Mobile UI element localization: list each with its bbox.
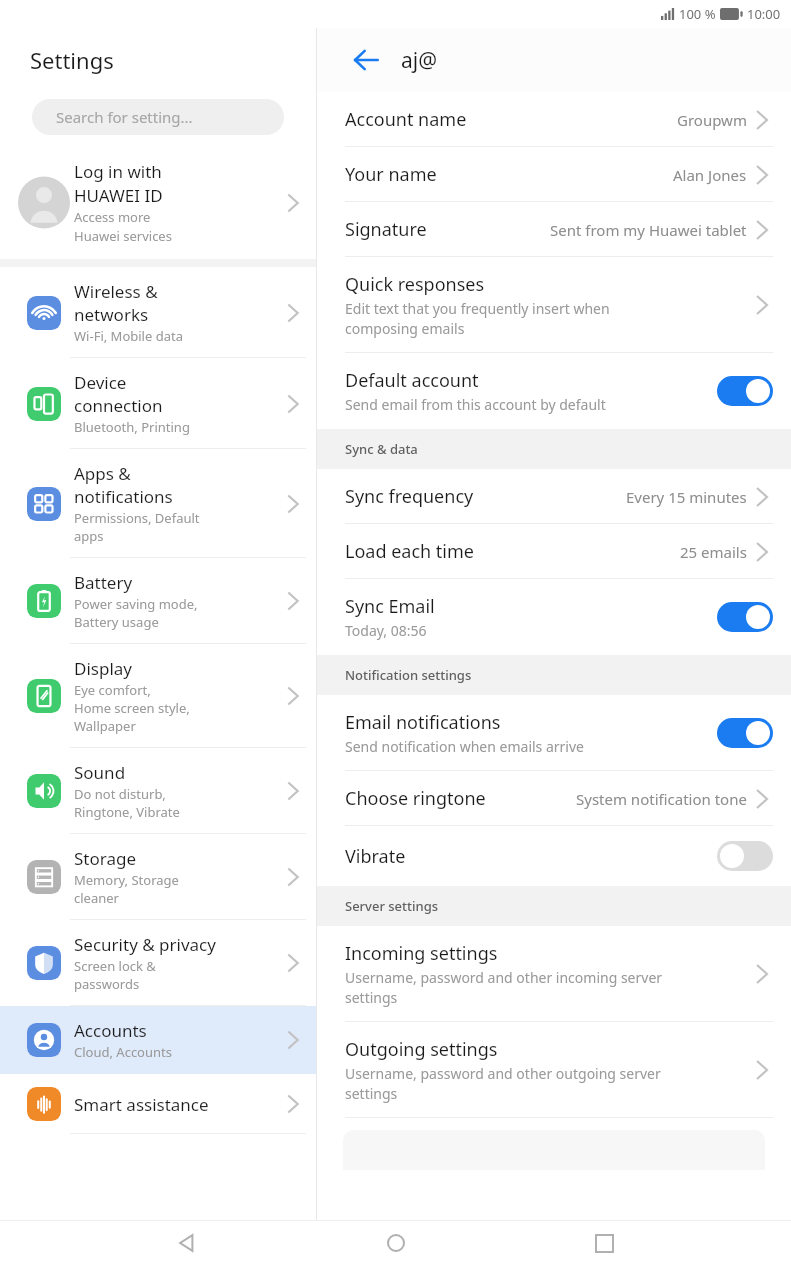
staticText: Username, password and other incoming se…	[345, 968, 663, 1007]
staticText: Edit text that you frequently insert whe…	[345, 299, 610, 338]
staticText: 10:00	[747, 5, 781, 23]
staticText: Default account	[345, 368, 479, 393]
button[interactable]: Signature	[317, 202, 791, 257]
button[interactable]: Account name	[317, 92, 791, 147]
staticText: Sound	[74, 761, 126, 784]
button[interactable]: Smart assistance	[0, 1074, 316, 1134]
button[interactable]: Apps & notifications	[0, 449, 316, 558]
staticText: Load each time	[345, 539, 474, 564]
staticText: Screen lock & passwords	[74, 957, 156, 993]
button[interactable]: Back	[165, 1221, 209, 1265]
button[interactable]: Security & privacy	[0, 920, 316, 1006]
staticText: Permissions, Default apps	[74, 509, 200, 545]
button[interactable]: Wireless & networks	[0, 267, 316, 358]
staticText: Power saving mode, Battery usage	[74, 595, 198, 631]
button[interactable]: Your name	[317, 147, 791, 202]
button[interactable]: Back	[345, 39, 387, 81]
staticText: Settings	[30, 45, 114, 75]
button[interactable]: Sync Email	[317, 579, 791, 655]
button[interactable]: Choose ringtone	[317, 771, 791, 826]
staticText: Account name	[345, 107, 467, 132]
staticText: Incoming settings	[345, 941, 498, 966]
staticText: Access more Huawei services	[74, 208, 172, 245]
button[interactable]: Load each time	[317, 524, 791, 579]
staticText: Email notifications	[345, 710, 501, 735]
staticText: Send email from this account by default	[345, 395, 606, 414]
button[interactable]: Display	[0, 644, 316, 748]
button[interactable]: Storage	[0, 834, 316, 920]
staticText: Send notification when emails arrive	[345, 737, 584, 756]
staticText: Accounts	[74, 1019, 147, 1042]
staticText: 25 emails	[680, 542, 747, 562]
staticText: Storage	[74, 847, 137, 870]
staticText: Today, 08:56	[345, 621, 427, 640]
staticText: aj@	[401, 46, 438, 75]
button[interactable]: Sound	[0, 748, 316, 834]
staticText: Alan Jones	[673, 165, 747, 185]
staticText: Signature	[345, 217, 427, 242]
staticText: Groupwm	[677, 110, 747, 130]
staticText: Choose ringtone	[345, 786, 486, 811]
staticText: Sync & data	[345, 440, 418, 458]
button[interactable]: Search for setting...	[32, 99, 284, 135]
staticText: Wi-Fi, Mobile data	[74, 327, 183, 345]
button[interactable]: Outgoing settings	[317, 1022, 791, 1118]
staticText: Quick responses	[345, 272, 485, 297]
button[interactable]: Quick responses	[317, 257, 791, 353]
button[interactable]: Accounts	[0, 1006, 316, 1074]
staticText: Smart assistance	[74, 1093, 209, 1116]
staticText: Search for setting...	[56, 107, 193, 127]
staticText: Sync Email	[345, 594, 435, 619]
staticText: Display	[74, 657, 132, 680]
staticText: Device connection	[74, 371, 163, 417]
button[interactable]: Battery	[0, 558, 316, 644]
button[interactable]: Sync frequency	[317, 469, 791, 524]
button[interactable]: Home	[374, 1221, 418, 1265]
staticText: Do not disturb, Ringtone, Vibrate	[74, 785, 180, 821]
button[interactable]: Email notifications	[317, 695, 791, 771]
button[interactable]: Incoming settings	[317, 926, 791, 1022]
staticText: Sync frequency	[345, 484, 474, 509]
button[interactable]: Device connection	[0, 358, 316, 449]
staticText: Notification settings	[345, 666, 472, 684]
staticText: Username, password and other outgoing se…	[345, 1064, 661, 1103]
staticText: 100 %	[679, 5, 716, 23]
staticText: Wireless & networks	[74, 280, 158, 326]
staticText: Cloud, Accounts	[74, 1043, 172, 1061]
staticText: Battery	[74, 571, 133, 594]
staticText: Security & privacy	[74, 933, 216, 956]
button[interactable]: Default account	[317, 353, 791, 429]
staticText: Log in with HUAWEI ID	[74, 160, 163, 207]
button[interactable]: Vibrate	[317, 826, 791, 886]
staticText: Apps & notifications	[74, 462, 173, 508]
staticText: Vibrate	[345, 844, 406, 869]
staticText: Eye comfort, Home screen style, Wallpape…	[74, 681, 190, 735]
staticText: Bluetooth, Printing	[74, 418, 190, 436]
button[interactable]: Log in with HUAWEI ID	[0, 150, 316, 259]
staticText: Your name	[345, 162, 437, 187]
staticText: Memory, Storage cleaner	[74, 871, 179, 907]
staticText: Sent from my Huawei tablet	[550, 220, 747, 240]
staticText: System notification tone	[576, 789, 747, 809]
staticText: Outgoing settings	[345, 1037, 498, 1062]
button[interactable]: Recents	[582, 1221, 626, 1265]
staticText: Server settings	[345, 897, 439, 915]
staticText: Every 15 minutes	[626, 487, 747, 507]
